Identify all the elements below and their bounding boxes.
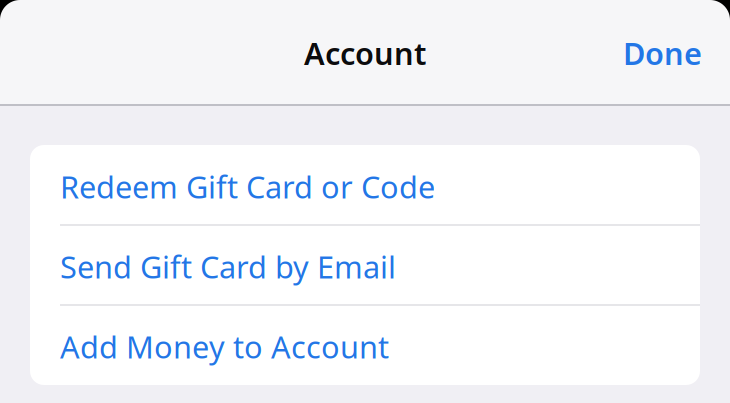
staticText: Redeem Gift Card or Code [60, 166, 435, 207]
button[interactable]: Redeem Gift Card or Code [30, 145, 700, 225]
staticText: Done [623, 33, 702, 73]
staticText: Account [304, 33, 426, 73]
staticText: Add Money to Account [60, 326, 389, 367]
button[interactable]: Done [623, 23, 730, 83]
button[interactable]: Add Money to Account [30, 305, 700, 385]
staticText: Send Gift Card by Email [60, 246, 396, 287]
button[interactable]: Send Gift Card by Email [30, 225, 700, 305]
